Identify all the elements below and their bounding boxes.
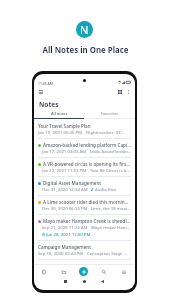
button[interactable]: Home [80,278,88,285]
staticText: 11:45 AM [38,81,53,86]
button[interactable]: Menu [119,267,128,276]
staticText: Campaign Management [38,244,91,250]
button[interactable]: Favorites [84,111,135,116]
button[interactable]: More options [125,89,131,95]
staticText: All Notes in One Place [0,45,171,56]
staticText: Sep 21, 2020 11:24 AM [42,224,88,230]
staticText: Mayo maker Ham... [91,224,131,230]
button[interactable]: Recent apps [61,278,69,285]
staticText: Audio files [95,186,117,192]
staticText: Notes [39,100,59,109]
staticText: Jan 17, 2021 03:03 AM [42,148,87,154]
staticText: Jan 12, 2021 11:53 PM [42,167,87,173]
button[interactable]: Your Travel Sample Plan [34,120,135,139]
button[interactable]: Search [99,267,108,276]
staticText: Your Travel Sample Plan [38,123,91,129]
staticText: Sep 18, 2020 02:43 PM [38,250,84,256]
staticText: Dec 31, 2020 12:34 AM [42,186,88,192]
staticText: N [80,22,89,37]
button[interactable]: A VR-powered circus is opening its first… [34,158,135,177]
staticText: Conception Stage ... [87,250,128,256]
button[interactable]: All notes [34,111,84,116]
button[interactable]: Notes [39,267,48,276]
staticText: Amazon-backed lending platform Capital F… [43,142,131,148]
button[interactable]: Folders [59,267,68,276]
staticText: Flightnumber: XY... [86,129,124,135]
staticText: A VR-powered circus is opening its first… [43,161,131,167]
button[interactable]: Amazon-backed lending platform Capital F… [34,139,135,158]
button[interactable]: Mayo maker Hampton Creek is shedding s..… [34,215,135,241]
staticText: Lime, the 18 most ... [91,205,131,211]
staticText: Favorites [101,111,119,116]
button[interactable]: Menu [38,89,44,95]
staticText: Jan 19, 2021 05:35 PM [38,129,83,135]
button[interactable]: Grid view [117,89,123,95]
button[interactable]: Campaign Management [34,241,135,260]
button[interactable]: A Lime scooter rider died this morning i… [34,196,135,215]
staticText: A Lime scooter rider died this morning i… [43,199,131,205]
button[interactable]: Back [98,278,106,285]
staticText: Dec 30, 2020 06:35 PM [42,205,88,211]
staticText: All notes [51,111,68,116]
staticText: Mayo maker Hampton Creek is shedding s..… [43,218,131,224]
button[interactable]: Digital Asset Management [34,177,135,196]
staticText: Jun 28, 2021 12:00 PM [46,231,91,237]
staticText: India-based lendin... [90,148,131,154]
staticText: Digital Asset Management [43,180,102,186]
button[interactable]: Add note [79,267,88,276]
staticText: Two Bit Circus is b... [90,167,130,173]
